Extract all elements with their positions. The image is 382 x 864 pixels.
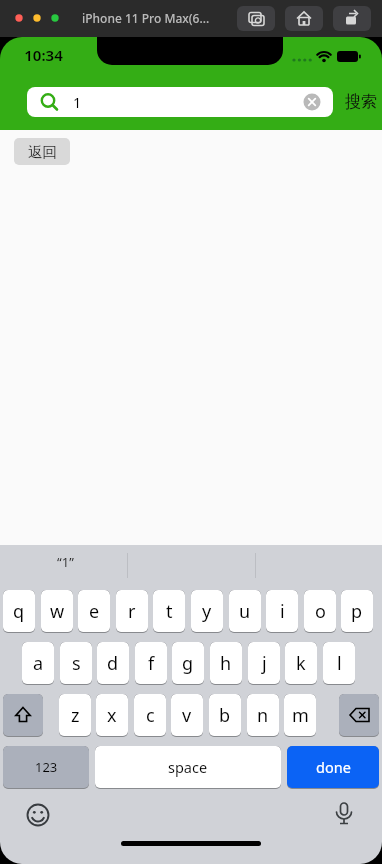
button[interactable]: done	[287, 746, 379, 789]
staticText: 1	[73, 92, 82, 112]
staticText: s	[72, 651, 81, 676]
staticText: e	[89, 599, 100, 624]
button[interactable]: p	[341, 590, 373, 633]
staticText: k	[296, 651, 306, 676]
button[interactable]	[26, 803, 50, 827]
button[interactable]: k	[285, 642, 317, 685]
staticText: t	[166, 599, 173, 624]
button[interactable]: v	[171, 694, 203, 737]
staticText: w	[50, 599, 65, 624]
staticText: y	[202, 599, 212, 624]
staticText: a	[33, 651, 44, 676]
staticText: space	[168, 757, 208, 777]
button[interactable]: y	[191, 590, 223, 633]
button[interactable]: l	[323, 642, 355, 685]
staticText: g	[182, 651, 194, 676]
staticText: z	[71, 703, 80, 728]
staticText: 返回	[28, 143, 57, 161]
staticText: j	[262, 651, 267, 676]
button[interactable]: space	[95, 746, 281, 789]
button[interactable]: a	[22, 642, 54, 685]
button[interactable]: u	[229, 590, 261, 633]
button[interactable]: g	[172, 642, 204, 685]
staticText: b	[219, 703, 231, 728]
button[interactable]: f	[135, 642, 167, 685]
button[interactable]: h	[210, 642, 242, 685]
staticText: “1”	[57, 553, 74, 571]
button[interactable]	[285, 6, 323, 31]
staticText: i	[280, 599, 285, 624]
button[interactable]: j	[248, 642, 280, 685]
button[interactable]	[333, 6, 371, 31]
button[interactable]: d	[97, 642, 129, 685]
button[interactable]: z	[59, 694, 91, 737]
staticText: f	[148, 651, 155, 676]
button[interactable]: 123	[3, 746, 89, 789]
button[interactable]: q	[3, 590, 35, 633]
staticText: r	[128, 599, 136, 624]
staticText: p	[351, 599, 363, 624]
staticText: 10:34	[24, 45, 63, 65]
button[interactable]: 搜索	[340, 87, 382, 117]
button[interactable]: s	[60, 642, 92, 685]
button[interactable]: c	[134, 694, 166, 737]
staticText: 123	[35, 758, 58, 776]
staticText: q	[13, 599, 25, 624]
button[interactable]	[237, 6, 275, 31]
staticText: 搜索	[345, 92, 377, 112]
button[interactable]: r	[116, 590, 148, 633]
staticText: x	[107, 703, 117, 728]
button[interactable]: e	[78, 590, 110, 633]
button[interactable]: w	[41, 590, 73, 633]
staticText: done	[316, 757, 351, 777]
staticText: h	[220, 651, 232, 676]
staticText: u	[239, 599, 251, 624]
button[interactable]	[3, 694, 43, 737]
button[interactable]: t	[153, 590, 185, 633]
staticText: o	[315, 599, 326, 624]
button[interactable]: i	[266, 590, 298, 633]
button[interactable]: n	[247, 694, 279, 737]
staticText: v	[182, 703, 192, 728]
button[interactable]	[339, 694, 379, 737]
button[interactable]: b	[209, 694, 241, 737]
button[interactable]: m	[284, 694, 316, 737]
button[interactable]: o	[304, 590, 336, 633]
button[interactable]: 1	[27, 87, 333, 117]
button[interactable]: 返回	[14, 138, 70, 165]
staticText: l	[337, 651, 342, 676]
staticText: d	[107, 651, 119, 676]
staticText: m	[292, 703, 309, 728]
staticText: c	[146, 703, 155, 728]
button[interactable]	[332, 801, 356, 827]
staticText: iPhone 11 Pro Max(6...	[82, 10, 210, 26]
staticText: n	[257, 703, 269, 728]
button[interactable]: x	[96, 694, 128, 737]
